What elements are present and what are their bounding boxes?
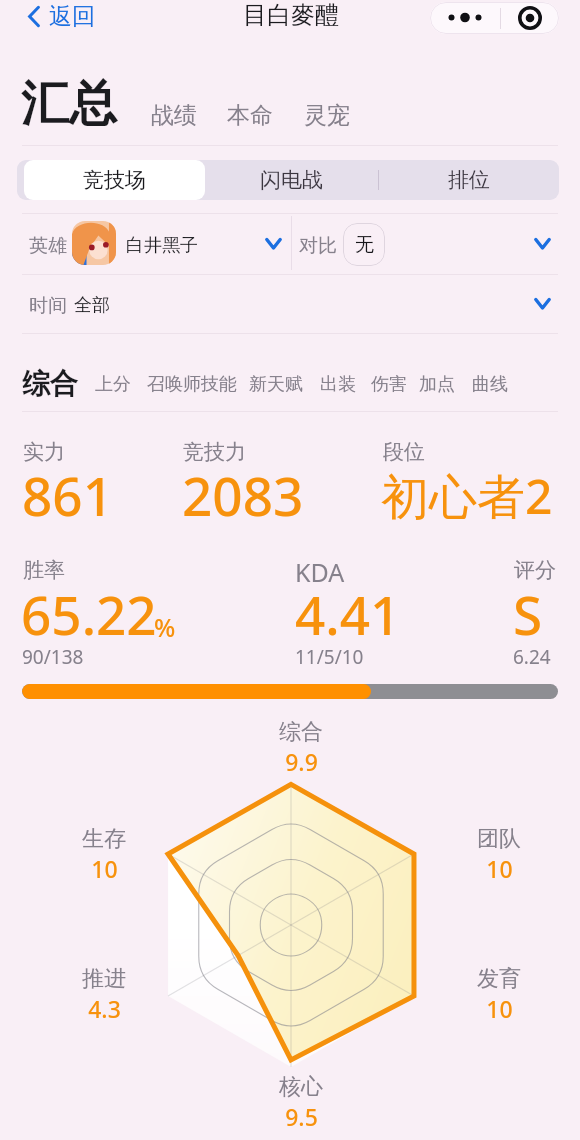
- staticText: 65.22: [21, 578, 157, 650]
- staticText: 发育: [477, 965, 521, 993]
- staticText: 白井黑子: [126, 234, 198, 257]
- button[interactable]: 曲线: [0, 0, 36, 23]
- button[interactable]: More options: [430, 2, 500, 34]
- button[interactable]: [0, 275, 580, 333]
- button[interactable]: 出装: [0, 0, 36, 23]
- button[interactable]: 新天赋: [0, 0, 54, 23]
- staticText: 闪电战: [260, 167, 323, 193]
- staticText: 时间: [29, 294, 67, 318]
- staticText: 竞技力: [183, 439, 246, 465]
- button[interactable]: 伤害: [0, 0, 36, 23]
- staticText: 90/138: [22, 644, 84, 670]
- button[interactable]: 汇总: [0, 0, 96, 60]
- button[interactable]: 竞技场: [24, 160, 205, 200]
- button[interactable]: 本命: [0, 0, 46, 29]
- staticText: 目白麥醴: [243, 0, 339, 30]
- staticText: 4.41: [295, 578, 401, 650]
- staticText: 初心者2: [381, 463, 553, 529]
- staticText: 9.9: [285, 746, 318, 777]
- staticText: S: [513, 578, 543, 650]
- button[interactable]: [0, 214, 291, 274]
- staticText: 团队: [477, 825, 521, 853]
- button[interactable]: 排位: [379, 160, 559, 200]
- staticText: 排位: [448, 167, 490, 193]
- button[interactable]: 加点: [0, 0, 36, 23]
- staticText: %: [154, 610, 176, 644]
- staticText: 综合: [279, 718, 323, 746]
- button[interactable]: Close mini program: [501, 2, 559, 34]
- staticText: 4.3: [88, 993, 121, 1024]
- staticText: 10: [91, 853, 118, 884]
- button[interactable]: 综合: [0, 0, 56, 35]
- staticText: 无: [355, 233, 374, 257]
- button[interactable]: 返回: [22, 1, 101, 31]
- staticText: 2083: [182, 459, 304, 531]
- button[interactable]: 闪电战: [205, 160, 378, 200]
- staticText: 实力: [23, 439, 65, 465]
- staticText: 段位: [383, 439, 425, 465]
- staticText: 竞技场: [83, 167, 146, 193]
- button[interactable]: 战绩: [0, 0, 46, 29]
- staticText: 全部: [74, 294, 110, 317]
- staticText: KDA: [295, 555, 345, 589]
- staticText: 对比: [299, 234, 337, 258]
- staticText: 861: [22, 459, 113, 531]
- staticText: 返回: [49, 2, 95, 31]
- staticText: 9.5: [285, 1101, 318, 1132]
- staticText: 10: [486, 853, 513, 884]
- staticText: 评分: [514, 557, 556, 583]
- staticText: 英雄: [29, 234, 67, 258]
- staticText: 10: [486, 993, 513, 1024]
- staticText: 11/5/10: [295, 644, 364, 670]
- button[interactable]: 召唤师技能: [0, 0, 90, 23]
- button[interactable]: 上分: [0, 0, 36, 23]
- staticText: 核心: [279, 1073, 323, 1101]
- staticText: 生存: [82, 825, 126, 853]
- staticText: 胜率: [23, 557, 65, 583]
- button[interactable]: 灵宠: [0, 0, 46, 29]
- staticText: 6.24: [513, 644, 551, 670]
- button[interactable]: [292, 214, 558, 274]
- staticText: 推进: [82, 965, 126, 993]
